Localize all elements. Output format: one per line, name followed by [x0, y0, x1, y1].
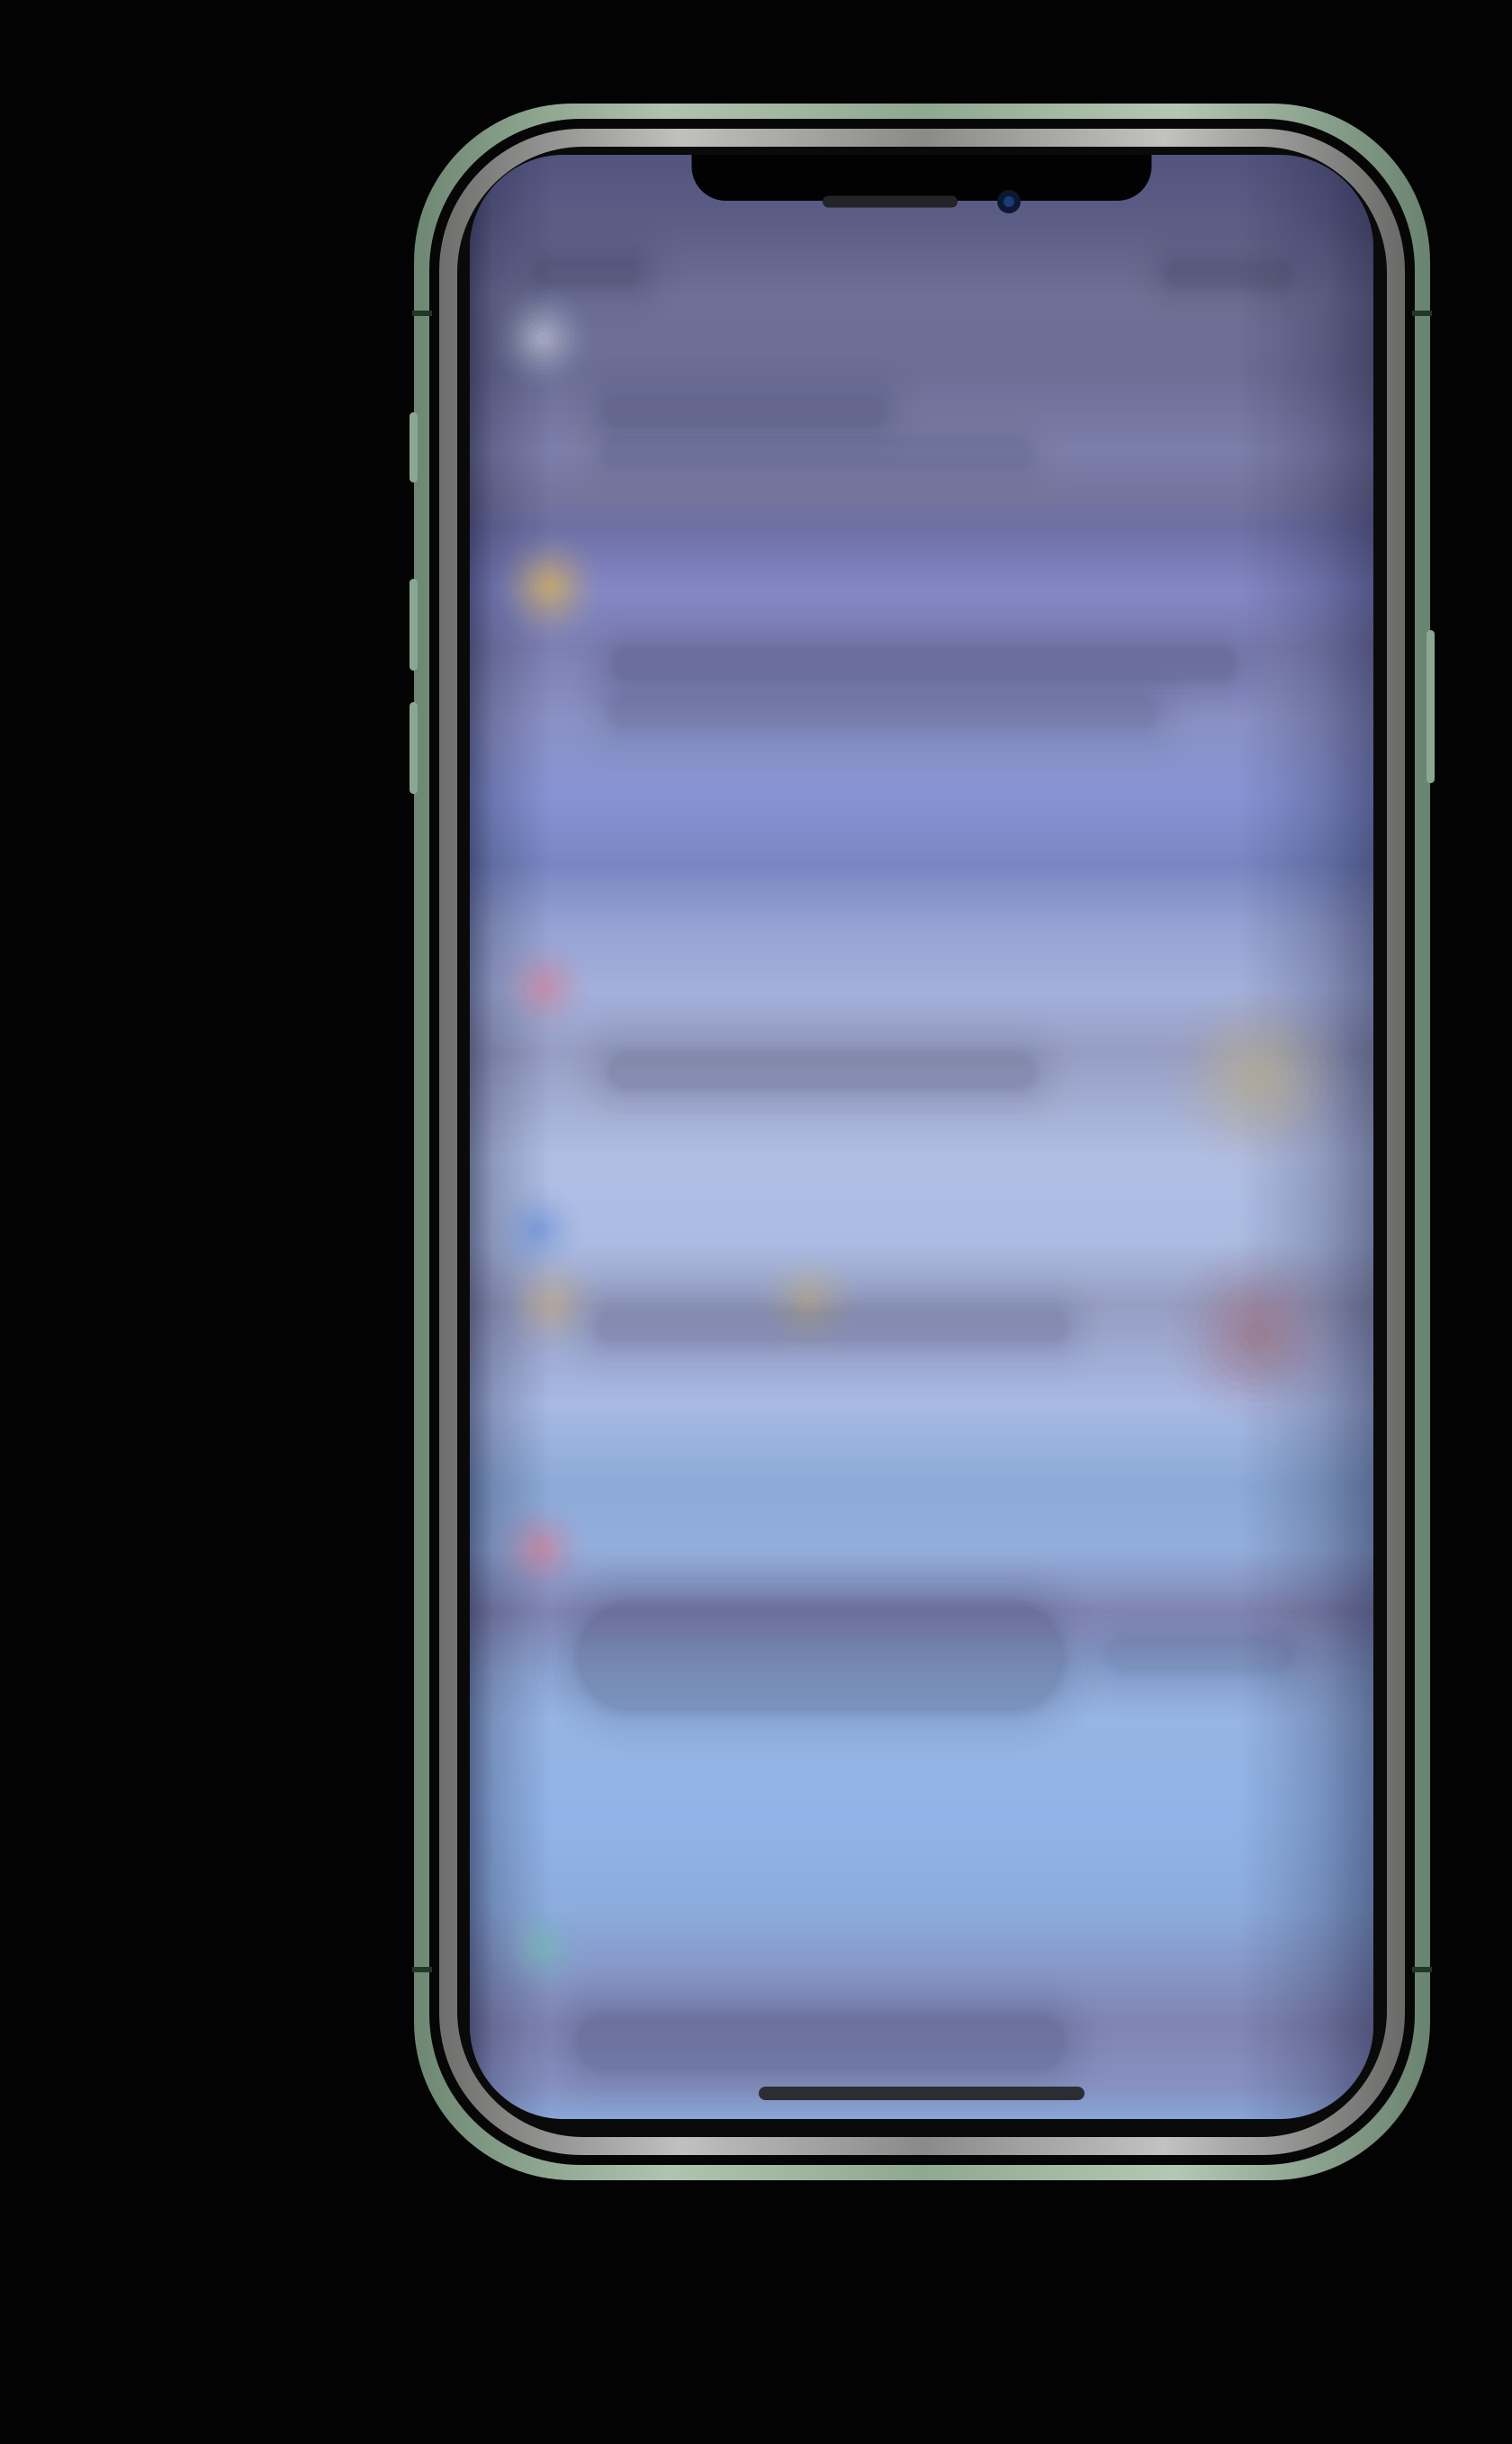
button[interactable]	[504, 525, 1339, 860]
button[interactable]: Time	[470, 155, 662, 272]
button[interactable]	[504, 275, 1339, 489]
button[interactable]	[504, 1488, 1339, 1853]
button[interactable]	[504, 1890, 1339, 2119]
button[interactable]: Status	[470, 155, 680, 268]
button[interactable]	[504, 923, 1339, 1449]
